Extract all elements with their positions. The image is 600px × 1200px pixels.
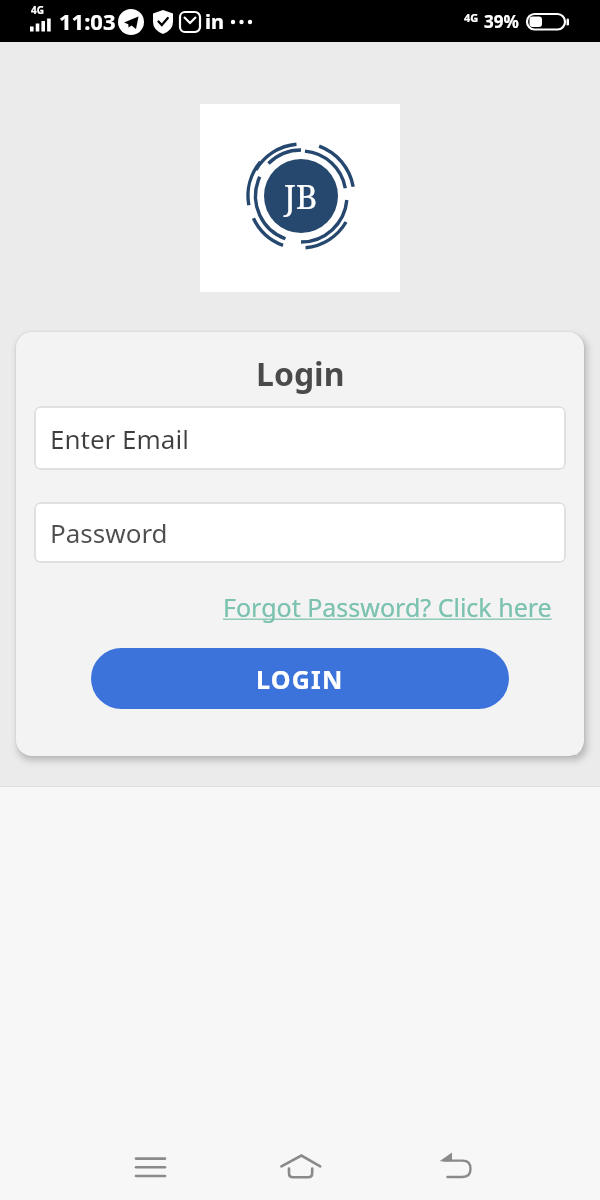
staticText: Enter Email	[50, 421, 189, 456]
button[interactable]: Forgot Password? Click here	[223, 590, 552, 624]
staticText: JB	[284, 174, 318, 219]
staticText: 4G	[464, 10, 479, 25]
staticText: 11:03	[59, 6, 116, 36]
button[interactable]	[430, 1135, 490, 1195]
button[interactable]: Password	[34, 502, 566, 563]
button[interactable]: LOGIN	[91, 648, 509, 709]
staticText: in	[205, 8, 224, 35]
staticText: Login	[256, 352, 345, 396]
staticText: 4G	[31, 3, 44, 17]
staticText: LOGIN	[256, 662, 344, 696]
button[interactable]	[121, 1140, 181, 1195]
button[interactable]	[270, 1138, 332, 1193]
staticText: Password	[50, 515, 168, 550]
staticText: 39%	[484, 10, 519, 33]
staticText: Forgot Password? Click here	[223, 590, 552, 624]
button[interactable]: Enter Email	[34, 406, 566, 470]
